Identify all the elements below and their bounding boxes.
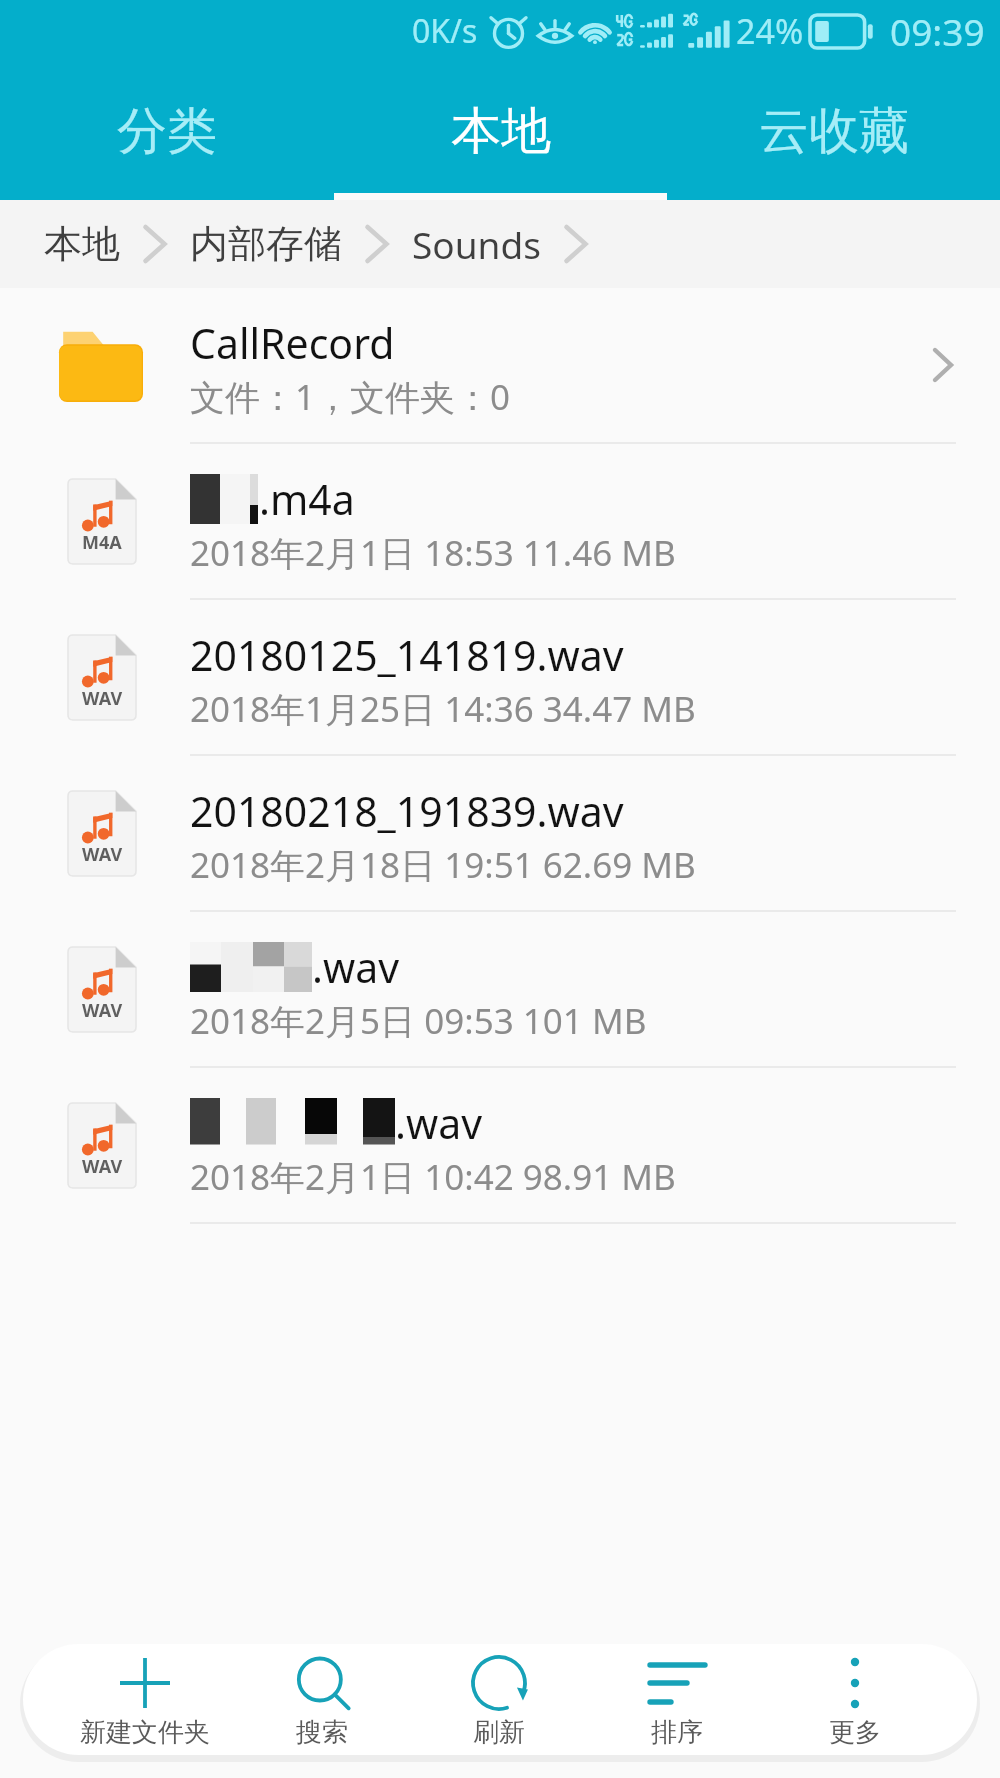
staticText: 排序 <box>651 1716 703 1749</box>
staticText: 刷新 <box>473 1716 525 1749</box>
staticText: 新建文件夹 <box>80 1716 210 1749</box>
staticText: 24% <box>736 8 804 54</box>
button[interactable]: WAV <box>0 600 1000 754</box>
other: Open folder <box>928 339 958 391</box>
staticText: WAV <box>82 1154 123 1179</box>
staticText: CallRecord <box>190 315 395 371</box>
button[interactable]: 更多 <box>766 1644 944 1755</box>
button[interactable]: CallRecord <box>0 288 1000 442</box>
button[interactable]: WAV <box>0 756 1000 910</box>
staticText: Sounds <box>412 219 541 269</box>
button[interactable]: 分类 <box>0 62 334 200</box>
button[interactable]: M4A <box>0 444 1000 598</box>
staticText: 分类 <box>117 100 217 163</box>
staticText: 搜索 <box>296 1716 348 1749</box>
staticText: M4A <box>82 530 122 555</box>
button[interactable]: 排序 <box>588 1644 766 1755</box>
staticText: 云收藏 <box>759 100 909 163</box>
button[interactable]: 新建文件夹 <box>56 1644 233 1755</box>
button[interactable]: WAV <box>0 1068 1000 1222</box>
staticText: 0K/s <box>412 9 478 53</box>
staticText: WAV <box>82 686 123 711</box>
staticText: .m4a <box>259 471 355 527</box>
button[interactable]: WAV <box>0 912 1000 1066</box>
staticText: 文件：1，文件夹：0 <box>190 373 511 421</box>
button[interactable]: 搜索 <box>233 1644 410 1755</box>
staticText: WAV <box>82 998 123 1023</box>
staticText: 内部存储 <box>190 220 342 268</box>
staticText: 2018年2月1日 10:42 98.91 MB <box>190 1153 676 1201</box>
staticText: WAV <box>82 842 123 867</box>
staticText: 2018年2月18日 19:51 62.69 MB <box>190 841 696 889</box>
staticText: .wav <box>395 1095 483 1151</box>
button[interactable]: 刷新 <box>410 1644 588 1755</box>
button[interactable]: Sounds <box>412 219 541 269</box>
button[interactable]: 内部存储 <box>190 220 342 268</box>
staticText: .wav <box>312 939 400 995</box>
staticText: 本地 <box>44 220 120 268</box>
staticText: 2018年2月5日 09:53 101 MB <box>190 997 647 1045</box>
button[interactable]: 本地 <box>44 220 120 268</box>
staticText: 2018年1月25日 14:36 34.47 MB <box>190 685 696 733</box>
button[interactable]: 云收藏 <box>667 62 1000 200</box>
staticText: 2018年2月1日 18:53 11.46 MB <box>190 529 676 577</box>
staticText: 本地 <box>451 100 551 163</box>
staticText: 更多 <box>829 1716 881 1749</box>
staticText: 20180125_141819.wav <box>190 627 624 683</box>
button[interactable]: 本地 <box>334 62 667 200</box>
staticText: 09:39 <box>890 6 985 56</box>
staticText: 20180218_191839.wav <box>190 783 624 839</box>
